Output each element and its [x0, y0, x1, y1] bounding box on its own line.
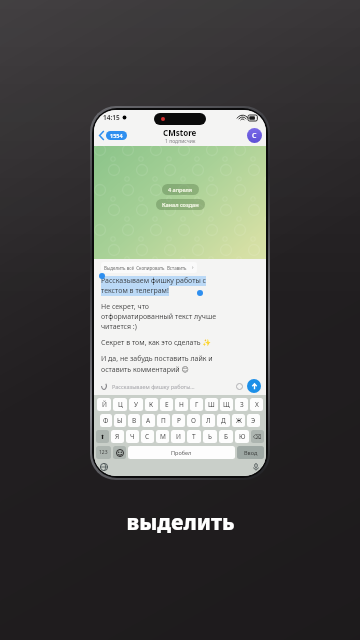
button[interactable]: У [129, 398, 143, 411]
button[interactable]: Attach [99, 381, 109, 391]
staticText: З [240, 400, 244, 409]
button[interactable]: Щ [220, 398, 233, 411]
button[interactable]: С [141, 430, 154, 443]
staticText: Рассказываем фишку работы… [112, 383, 235, 390]
staticText: 123 [99, 449, 108, 456]
staticText: У [134, 400, 139, 409]
staticText: Е [165, 400, 169, 409]
staticText: C [252, 131, 257, 141]
button[interactable]: Channel info [247, 128, 262, 143]
staticText: Ю [239, 432, 246, 441]
staticText: Б [224, 432, 228, 441]
button[interactable]: Я [111, 430, 124, 443]
staticText: ⌫ [253, 433, 262, 440]
staticText: Секрет в том, как это сделать ✨ [101, 338, 212, 348]
staticText: Ч [130, 432, 135, 441]
button[interactable]: Л [202, 414, 215, 427]
staticText: Ы [117, 416, 123, 425]
staticText: Выделить всё Скопировать Вставить [104, 265, 187, 271]
button[interactable]: Б [219, 430, 233, 443]
staticText: М [160, 432, 166, 441]
button[interactable]: 123 [96, 446, 111, 459]
staticText: Ж [236, 416, 242, 425]
staticText: Р [177, 416, 181, 425]
staticText: Э [251, 416, 256, 425]
button[interactable]: В [128, 414, 140, 427]
button[interactable]: Ц [113, 398, 127, 411]
button[interactable]: Emoji keyboard [113, 446, 126, 459]
button[interactable]: Ш [205, 398, 218, 411]
staticText: Ц [118, 400, 123, 409]
staticText: Г [195, 400, 199, 409]
button[interactable]: М [156, 430, 169, 443]
button[interactable]: Shift [96, 430, 109, 443]
staticText: текстом в телеграм! [101, 286, 169, 296]
staticText: Ш [208, 400, 215, 409]
staticText: Н [179, 400, 184, 409]
button[interactable]: Н [175, 398, 188, 411]
staticText: Ввод [244, 449, 258, 456]
button[interactable]: Ч [126, 430, 139, 443]
button[interactable]: Е [160, 398, 173, 411]
staticText: › [192, 264, 194, 271]
button[interactable]: Д [217, 414, 230, 427]
button[interactable]: Й [97, 398, 111, 411]
button[interactable]: О [187, 414, 200, 427]
staticText: А [146, 416, 151, 425]
button[interactable]: Dictation [251, 462, 261, 472]
button[interactable]: Х [250, 398, 263, 411]
button[interactable]: Ф [100, 414, 112, 427]
staticText: И да, не забудь поставить лайк и оставит… [101, 354, 213, 374]
button[interactable]: Back [99, 131, 127, 140]
staticText: 14:15 [103, 113, 120, 122]
button[interactable]: Ввод [237, 446, 264, 459]
button[interactable]: Backspace [251, 430, 264, 443]
staticText: 1554 [110, 132, 123, 139]
button[interactable]: Ы [114, 414, 126, 427]
staticText: Ф [103, 416, 109, 425]
staticText: 1 подписчик [165, 138, 196, 145]
staticText: Рассказываем фишку работы с [101, 276, 206, 286]
staticText: Л [206, 416, 211, 425]
button[interactable]: Р [172, 414, 185, 427]
button[interactable]: И [171, 430, 185, 443]
staticText: Не секрет, что отформатированный текст л… [101, 302, 217, 332]
button[interactable]: П [157, 414, 170, 427]
button[interactable]: Send [247, 379, 261, 393]
button[interactable]: Пробел [128, 446, 235, 459]
staticText: Щ [223, 400, 230, 409]
staticText: Я [115, 432, 120, 441]
button[interactable]: З [235, 398, 248, 411]
staticText: И [176, 432, 181, 441]
staticText: Т [192, 432, 196, 441]
button[interactable]: Выделить всё Скопировать Вставить [104, 264, 194, 271]
staticText: Ь [208, 432, 212, 441]
button[interactable]: Change keyboard [99, 462, 109, 472]
staticText: Х [255, 400, 259, 409]
button[interactable]: Т [187, 430, 201, 443]
staticText: CMstore [163, 127, 197, 138]
staticText: С [145, 432, 150, 441]
staticText: Д [221, 416, 226, 425]
staticText: П [161, 416, 166, 425]
staticText: В [132, 416, 137, 425]
button[interactable]: Ю [235, 430, 249, 443]
button[interactable]: А [142, 414, 155, 427]
button[interactable]: Ь [203, 430, 217, 443]
staticText: О [191, 416, 196, 425]
staticText: Пробел [171, 449, 192, 456]
button[interactable]: Emoji [235, 382, 244, 391]
staticText: Канал создан [162, 201, 199, 208]
button[interactable]: Ж [232, 414, 245, 427]
button[interactable]: Э [247, 414, 260, 427]
button[interactable]: Г [190, 398, 203, 411]
staticText: ⬆ [100, 433, 106, 440]
staticText: К [149, 400, 154, 409]
staticText: 4 апреля [168, 186, 193, 193]
staticText: выделить [126, 508, 235, 537]
staticText: Й [102, 400, 107, 409]
button[interactable]: К [145, 398, 158, 411]
